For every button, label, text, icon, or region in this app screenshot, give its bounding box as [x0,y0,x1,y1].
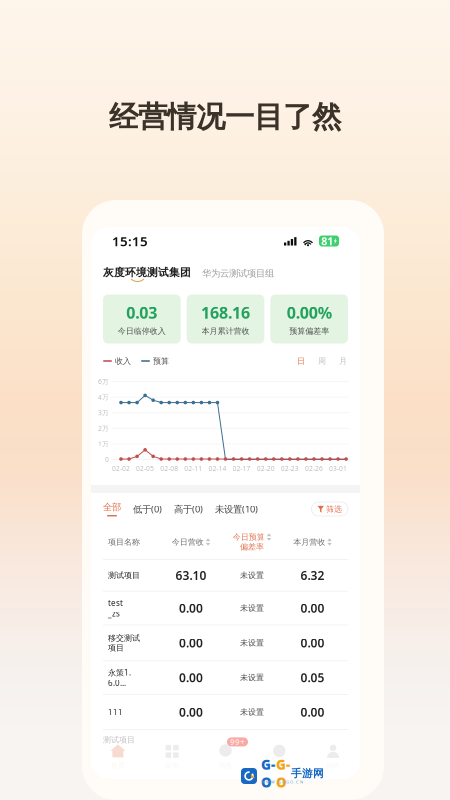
staticText: 预算偏差率 [289,326,329,336]
staticText: 02-26 [305,464,323,473]
staticText: 99+ [230,737,245,747]
staticText: 02-20 [257,464,275,473]
button[interactable]: 高于(0) [174,499,203,519]
button[interactable]: 灰度环境测试集团 [103,266,191,279]
button[interactable]: 永策1. 6.0... [96,661,355,694]
staticText: 0.00 [300,704,324,720]
button[interactable]: 未设置(10) [215,499,258,519]
staticText: 本月营收 [293,537,325,547]
staticText: 6万 [98,377,109,386]
staticText: 3万 [98,408,109,417]
staticText: 预算 [153,356,169,366]
staticText: 华为云测试项目组 [202,268,274,279]
button[interactable]: 周 [317,354,327,367]
staticText: 02-11 [184,464,202,473]
button[interactable]: 移交测试 项目 [96,625,355,660]
button[interactable]: test _zs [96,592,355,625]
staticText: 项目名称 [108,537,140,547]
staticText: 111 [108,707,123,717]
button[interactable]: 应用 [145,733,199,779]
staticText: 灰度环境测试集团 [103,266,191,279]
button[interactable]: 0.00% [270,294,348,343]
staticText: 周 [318,356,326,366]
staticText: 15:15 [112,232,148,250]
staticText: 手游网 [291,767,324,780]
staticText: 0.05 [300,670,324,686]
staticText: 偏差率 [240,542,264,552]
staticText: 0.00 [179,670,203,686]
staticText: 02-08 [160,464,178,473]
staticText: 高于(0) [174,503,203,515]
staticText: 永策1. 6.0... [108,667,131,688]
staticText: 0.00 [179,635,203,651]
staticText: 2万 [98,424,109,433]
staticText: 今日临停收入 [118,326,166,336]
button[interactable]: 月 [338,354,348,367]
staticText: 0.00 [300,635,324,651]
staticText: 02-05 [136,464,154,473]
staticText: 测试项目 [103,735,135,745]
staticText: 全部 [103,501,121,513]
button[interactable]: 审批 [252,733,306,779]
staticText: 0.00 [179,600,203,616]
button[interactable]: 我的 [306,733,360,779]
staticText: 0.00% [287,302,332,323]
staticText: 1万 [98,439,109,448]
staticText: 0.00 [179,704,203,720]
staticText: 81 [321,234,333,248]
staticText: 未设置 [240,603,264,613]
staticText: test _zs [108,597,123,619]
button[interactable]: 日 [296,354,306,367]
staticText: 收入 [115,356,131,366]
button[interactable]: 测试项目 [96,560,355,591]
button[interactable]: 0.03 [103,294,181,343]
button[interactable]: 首页 [91,733,145,779]
staticText: 未设置(10) [215,503,258,515]
staticText: 未设置 [240,570,264,580]
button[interactable]: 筛选 [311,502,348,516]
staticText: 4万 [98,393,109,402]
staticText: 本月累计营收 [201,326,249,336]
button[interactable]: 111 [96,695,355,729]
staticText: GO [276,756,290,791]
staticText: 0.03 [126,302,157,323]
staticText: 03-01 [329,464,347,473]
staticText: 0 [105,455,109,464]
staticText: GO [261,756,275,791]
staticText: 今日预算 [233,532,265,542]
staticText: 首页 [111,761,125,770]
staticText: 未设置 [240,707,264,717]
button[interactable]: 消息 [199,733,252,779]
staticText: 168.16 [201,302,250,323]
staticText: 经营情况一目了然 [109,99,341,135]
staticText: 审批 [272,761,286,770]
staticText: 未设置 [240,638,264,648]
staticText: 02-17 [233,464,251,473]
staticText: 02-02 [112,464,130,473]
staticText: 移交测试 项目 [108,633,140,653]
staticText: 日 [297,356,305,366]
staticText: 02-23 [281,464,299,473]
staticText: 02-14 [208,464,226,473]
staticText: 6.32 [300,567,324,583]
staticText: 0.00 [300,600,324,616]
staticText: 未设置 [240,673,264,683]
staticText: 测试项目 [108,570,140,580]
staticText: 月 [339,356,347,366]
button[interactable]: 168.16 [187,294,264,343]
staticText: 筛选 [326,504,342,514]
button[interactable]: 全部 [103,499,121,519]
staticText: 低于(0) [133,503,162,515]
staticText: W W W . G O G O . C N [261,779,303,785]
staticText: 今日营收 [172,537,204,547]
staticText: 63.10 [175,567,206,583]
button[interactable]: 低于(0) [133,499,162,519]
